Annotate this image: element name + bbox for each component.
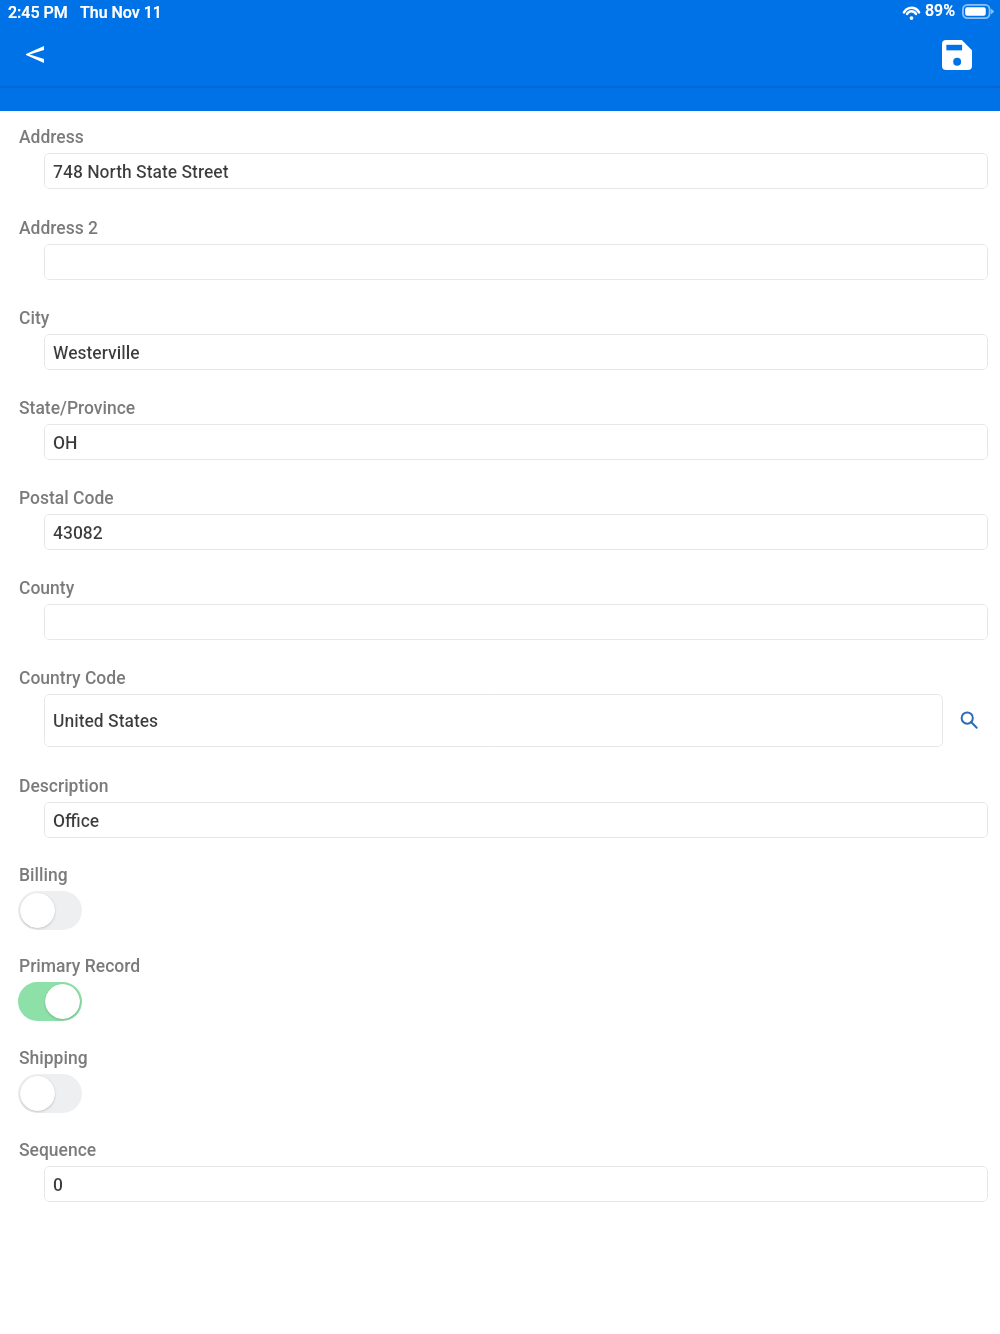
- button[interactable]: Search: [943, 694, 995, 747]
- staticText: Office: [53, 811, 100, 832]
- staticText: 748 North State Street: [53, 162, 229, 183]
- staticText: Country Code: [19, 668, 126, 689]
- button[interactable]: Back: [6, 26, 63, 83]
- button[interactable]: Shipping: [18, 1074, 82, 1113]
- button[interactable]: OH: [44, 424, 988, 460]
- button[interactable]: Office: [44, 802, 988, 838]
- button[interactable]: 748 North State Street: [44, 153, 988, 189]
- staticText: Description: [19, 776, 109, 797]
- staticText: OH: [53, 433, 78, 454]
- staticText: State/Province: [19, 398, 136, 419]
- staticText: United States: [53, 711, 159, 732]
- staticText: City: [19, 308, 50, 329]
- button[interactable]: Save: [928, 26, 985, 83]
- staticText: Primary Record: [19, 956, 141, 977]
- staticText: Sequence: [19, 1140, 97, 1161]
- button[interactable]: United States: [44, 694, 943, 747]
- staticText: Billing: [19, 865, 68, 886]
- staticText: Address: [19, 127, 84, 148]
- staticText: Thu Nov 11: [80, 3, 162, 22]
- staticText: 43082: [53, 523, 103, 544]
- staticText: 2:45 PM: [8, 3, 68, 22]
- staticText: Shipping: [19, 1048, 88, 1069]
- button[interactable]: Primary Record: [18, 982, 82, 1021]
- button[interactable]: [44, 244, 988, 280]
- staticText: 0: [53, 1175, 63, 1196]
- button[interactable]: Westerville: [44, 334, 988, 370]
- staticText: 89%: [925, 1, 955, 20]
- staticText: Postal Code: [19, 488, 114, 509]
- button[interactable]: 43082: [44, 514, 988, 550]
- staticText: County: [19, 578, 75, 599]
- button[interactable]: [44, 604, 988, 640]
- button[interactable]: Billing: [18, 891, 82, 930]
- button[interactable]: 0: [44, 1166, 988, 1202]
- staticText: Westerville: [53, 343, 140, 364]
- staticText: Address 2: [19, 218, 99, 239]
